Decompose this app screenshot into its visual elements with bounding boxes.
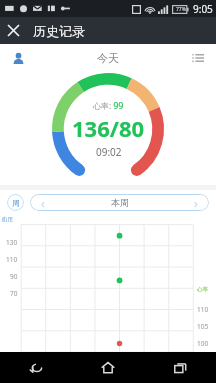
staticText: ‹: [41, 195, 45, 211]
staticText: 136/80: [72, 113, 145, 143]
button[interactable]: Next week: [183, 194, 209, 211]
button[interactable]: Back: [0, 352, 72, 383]
button[interactable]: Close: [0, 17, 27, 44]
staticText: 105: [197, 322, 209, 331]
staticText: 本周: [111, 197, 129, 208]
staticText: 心率: 99: [93, 99, 124, 111]
staticText: 130: [6, 238, 18, 247]
staticText: ›: [194, 195, 198, 211]
button[interactable]: Profile: [8, 48, 28, 68]
button[interactable]: List: [188, 48, 208, 68]
staticText: 周: [12, 198, 20, 208]
staticText: 110: [6, 255, 18, 264]
button[interactable]: Previous week: [30, 194, 56, 211]
staticText: 今天: [97, 51, 119, 65]
staticText: 历史记录: [33, 23, 85, 39]
button[interactable]: Previous week: [30, 194, 209, 211]
staticText: 90: [10, 272, 18, 281]
staticText: 110: [197, 305, 209, 314]
staticText: 心率: [197, 286, 208, 293]
staticText: 09:02: [96, 145, 122, 159]
button[interactable]: Recent apps: [144, 352, 216, 383]
button[interactable]: 周: [7, 194, 24, 211]
button[interactable]: Home: [72, 352, 144, 383]
staticText: 77%: [176, 6, 186, 13]
staticText: 70: [10, 289, 18, 298]
staticText: 血压: [2, 216, 13, 223]
staticText: 100: [197, 339, 209, 348]
staticText: 9:05: [193, 2, 213, 16]
